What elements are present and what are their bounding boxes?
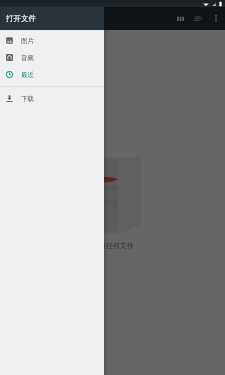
staticText: 音频 [21, 54, 34, 62]
staticText: 没有任何文件 [92, 241, 134, 250]
staticText: 打开文件 [6, 14, 36, 23]
staticText: 图片 [21, 37, 34, 45]
button[interactable]: Sort [189, 8, 207, 29]
button[interactable]: 最近 [0, 66, 104, 83]
button[interactable]: Grid view [171, 8, 189, 29]
button[interactable]: 音频 [0, 49, 104, 66]
button[interactable]: 下载 [0, 90, 104, 107]
button[interactable]: More options [207, 8, 225, 29]
staticText: 下载 [21, 95, 34, 103]
button[interactable]: Close navigation drawer [104, 0, 225, 375]
staticText: 最近 [21, 71, 34, 79]
button[interactable]: 图片 [0, 32, 104, 49]
